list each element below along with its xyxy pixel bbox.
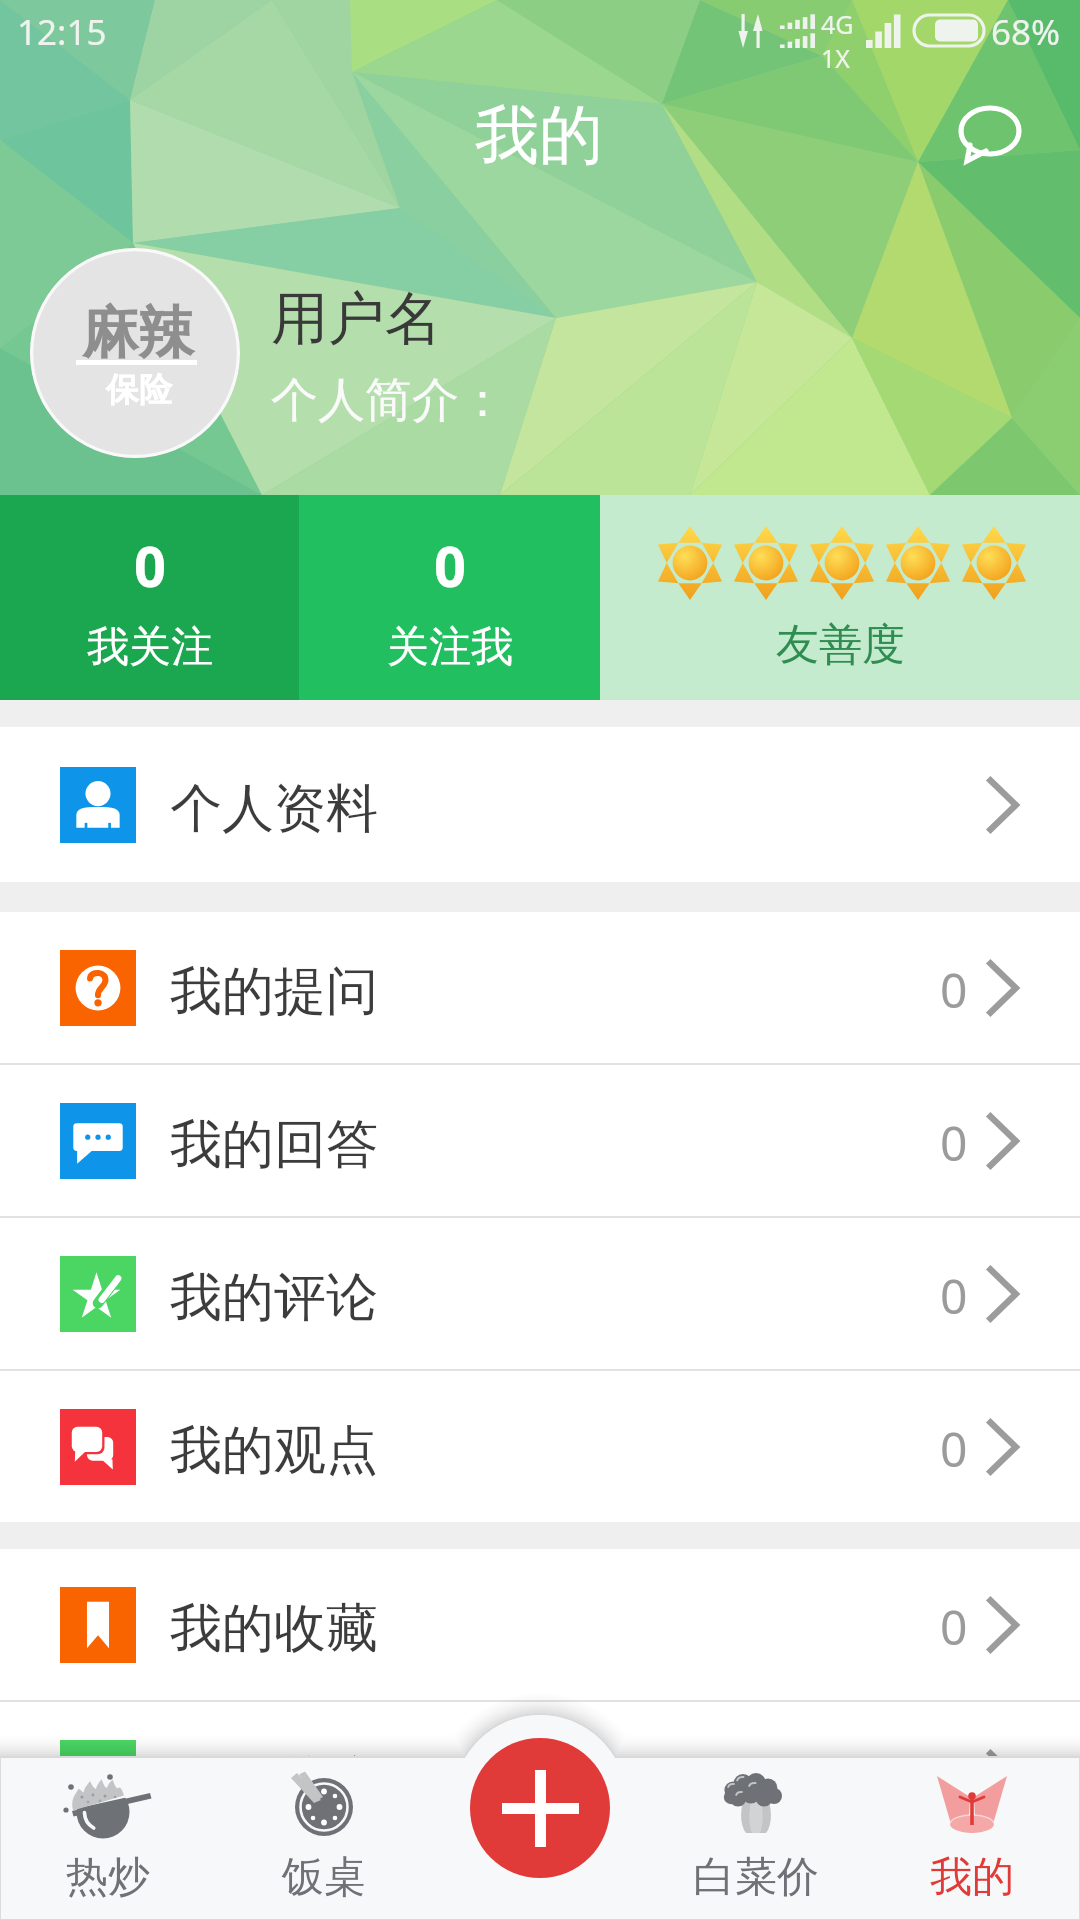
staticText: 我的: [930, 1851, 1014, 1904]
button[interactable]: 个人资料: [0, 727, 1080, 882]
staticText: 个人资料: [170, 776, 378, 842]
button[interactable]: 热炒: [0, 1757, 216, 1920]
staticText: 饭桌: [282, 1851, 366, 1904]
staticText: 我的: [475, 95, 603, 176]
button[interactable]: 我的回答: [0, 1065, 1080, 1216]
button[interactable]: 饭桌: [216, 1757, 432, 1920]
staticText: 我的收藏: [170, 1596, 378, 1662]
button[interactable]: Messages: [940, 95, 1045, 185]
staticText: 12:15: [17, 8, 107, 56]
staticText: 保险: [106, 369, 172, 411]
button[interactable]: 我的评论: [0, 1218, 1080, 1369]
button[interactable]: 0: [299, 495, 600, 700]
staticText: 0: [940, 1110, 968, 1175]
staticText: 0: [940, 1263, 968, 1328]
staticText: 68%: [991, 8, 1061, 56]
button[interactable]: 麻辣: [30, 248, 240, 458]
staticText: 我的关注: [170, 1749, 378, 1815]
button[interactable]: 我的提问: [0, 912, 1080, 1063]
button[interactable]: 0: [0, 495, 299, 700]
staticText: 1X: [821, 41, 850, 75]
staticText: 关注我: [387, 621, 513, 674]
staticText: 我的提问: [170, 959, 378, 1025]
staticText: 白菜价: [693, 1851, 819, 1904]
staticText: 0: [940, 957, 968, 1022]
staticText: 0: [940, 1747, 968, 1812]
staticText: 友善度: [776, 618, 905, 672]
staticText: 我的回答: [170, 1112, 378, 1178]
staticText: 热炒: [66, 1851, 150, 1904]
button[interactable]: 我的: [864, 1757, 1080, 1920]
staticText: 4G: [821, 7, 854, 41]
staticText: 0: [940, 1594, 968, 1659]
staticText: 0: [434, 527, 467, 603]
staticText: 0: [134, 527, 167, 603]
staticText: 用户名: [271, 283, 442, 355]
button[interactable]: 友善度: [600, 495, 1080, 700]
button[interactable]: 白菜价: [648, 1757, 864, 1920]
staticText: 个人简介：: [271, 371, 506, 430]
button[interactable]: 我的关注: [0, 1702, 1080, 1853]
staticText: 麻辣: [82, 298, 194, 369]
staticText: 我的评论: [170, 1265, 378, 1331]
button[interactable]: 我的收藏: [0, 1549, 1080, 1700]
button[interactable]: Add: [470, 1738, 610, 1878]
staticText: 我的观点: [170, 1418, 378, 1484]
staticText: 我关注: [87, 621, 213, 674]
staticText: 0: [940, 1416, 968, 1481]
button[interactable]: 我的观点: [0, 1371, 1080, 1522]
